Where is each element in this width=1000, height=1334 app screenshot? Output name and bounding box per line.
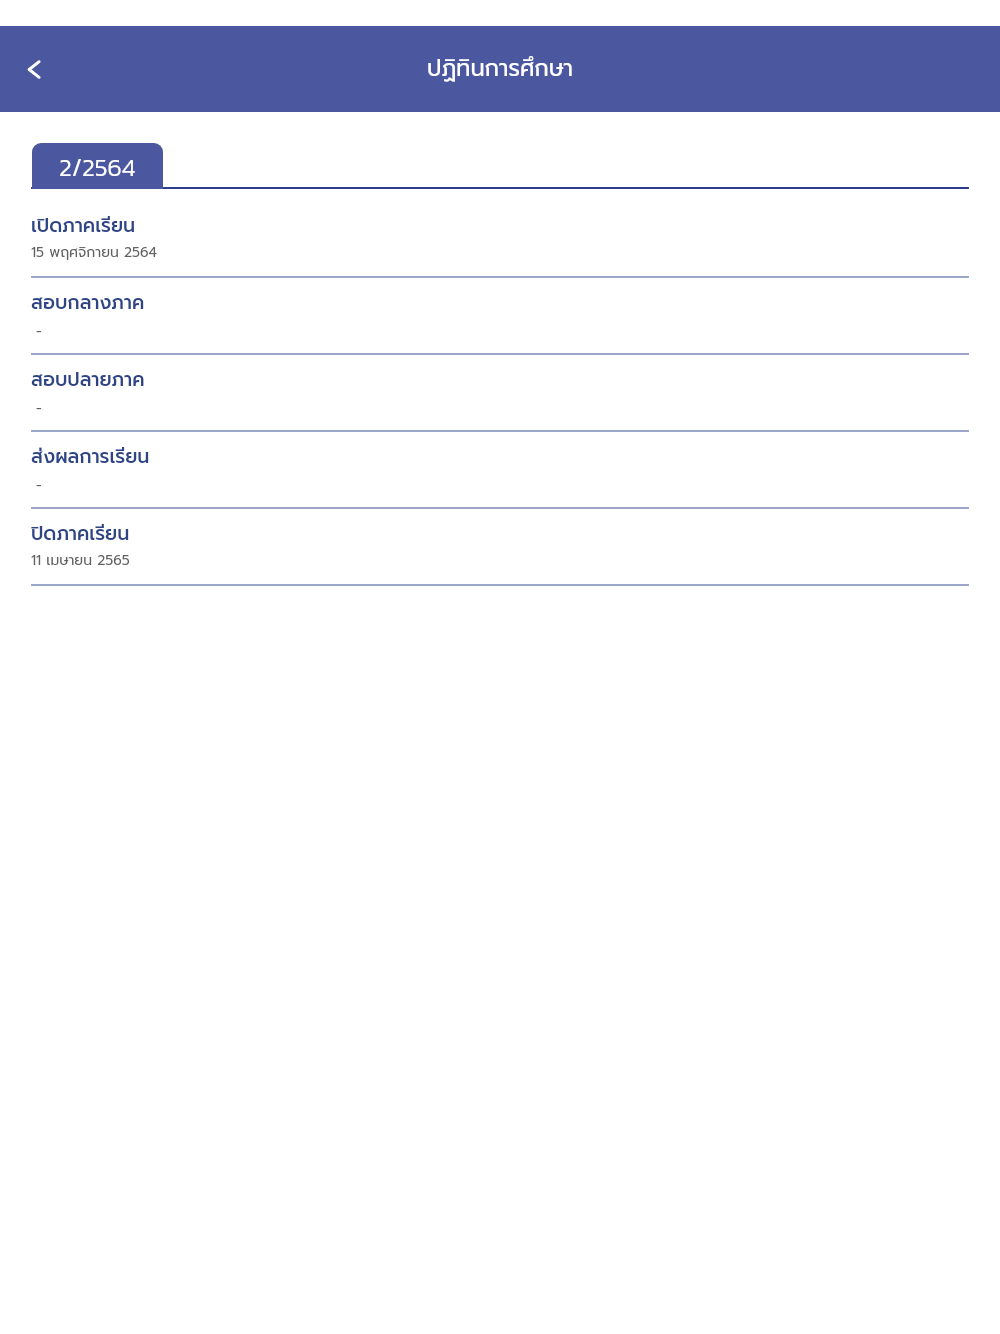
button[interactable]: Back: [10, 45, 58, 93]
button[interactable]: 2/2564: [32, 143, 163, 189]
staticText: สอบปลายภาค: [31, 365, 145, 394]
button[interactable]: เปิดภาคเรียน: [0, 201, 1000, 278]
staticText: สอบกลางภาค: [31, 288, 145, 317]
staticText: -: [36, 475, 42, 496]
button[interactable]: สอบปลายภาค: [0, 355, 1000, 432]
staticText: ปฏิทินการศึกษา: [427, 51, 573, 85]
button[interactable]: ปิดภาคเรียน: [0, 509, 1000, 586]
staticText: 15 พฤศจิกายน 2564: [31, 242, 158, 263]
staticText: -: [36, 321, 42, 342]
staticText: ปิดภาคเรียน: [31, 519, 130, 548]
button[interactable]: ส่งผลการเรียน: [0, 432, 1000, 509]
staticText: 11 เมษายน 2565: [31, 550, 130, 571]
staticText: -: [36, 398, 42, 419]
staticText: ส่งผลการเรียน: [31, 442, 150, 471]
button[interactable]: สอบกลางภาค: [0, 278, 1000, 355]
staticText: 2/2564: [59, 148, 136, 185]
staticText: เปิดภาคเรียน: [31, 211, 136, 240]
